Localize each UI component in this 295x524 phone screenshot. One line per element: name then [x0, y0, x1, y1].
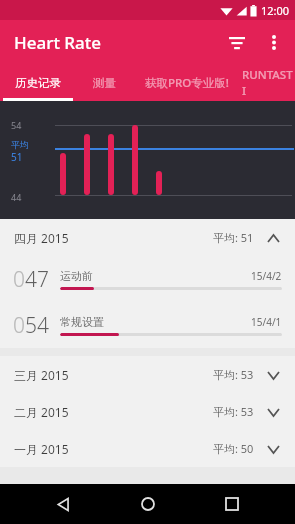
staticText: 三月 2015 — [14, 367, 69, 383]
button[interactable]: Recents — [210, 484, 254, 524]
staticText: 15/4/1 — [251, 315, 282, 329]
staticText: 运动前 — [60, 269, 93, 283]
button[interactable]: Collapse — [263, 228, 283, 248]
button[interactable]: 0 — [0, 302, 295, 348]
button[interactable]: Back — [41, 484, 85, 524]
staticText: 常规设置 — [60, 315, 104, 329]
button[interactable]: 三月 2015 — [0, 356, 295, 393]
staticText: 54 — [11, 119, 22, 131]
staticText: 平均: 53 — [213, 404, 254, 419]
button[interactable]: Home — [126, 484, 170, 524]
staticText: 0 — [13, 311, 25, 340]
button[interactable]: Filter — [217, 22, 257, 62]
staticText: 二月 2015 — [14, 404, 69, 420]
staticText: Heart Rate — [14, 31, 102, 54]
staticText: 测量 — [93, 76, 116, 90]
button[interactable]: RUNTASTI — [242, 64, 295, 101]
button[interactable]: 获取PRO专业版! — [132, 64, 242, 101]
staticText: 15/4/2 — [251, 269, 282, 283]
staticText: 54 — [25, 311, 49, 340]
button[interactable]: 0 — [0, 256, 295, 302]
staticText: 44 — [11, 191, 22, 203]
button[interactable]: 历史记录 — [0, 64, 76, 101]
button[interactable]: 测量 — [76, 64, 132, 101]
button[interactable]: More options — [257, 25, 291, 59]
staticText: 平均 — [11, 139, 29, 150]
staticText: 平均: 51 — [213, 230, 254, 245]
staticText: 平均: 53 — [213, 367, 254, 382]
staticText: 平均: 50 — [213, 441, 254, 456]
button[interactable]: 四月 2015 — [0, 219, 295, 256]
staticText: 历史记录 — [15, 76, 61, 90]
staticText: 0 — [13, 265, 25, 294]
staticText: 51 — [11, 150, 23, 164]
staticText: 获取PRO专业版! — [145, 75, 229, 91]
button[interactable]: 二月 2015 — [0, 393, 295, 430]
staticText: RUNTASTI — [242, 67, 295, 99]
staticText: 四月 2015 — [14, 230, 69, 246]
button[interactable]: Expand — [263, 439, 283, 459]
staticText: 一月 2015 — [14, 441, 69, 457]
button[interactable]: Expand — [263, 402, 283, 422]
staticText: 47 — [25, 265, 49, 294]
staticText: 12:00 — [261, 3, 290, 18]
button[interactable]: Expand — [263, 365, 283, 385]
button[interactable]: 一月 2015 — [0, 430, 295, 467]
